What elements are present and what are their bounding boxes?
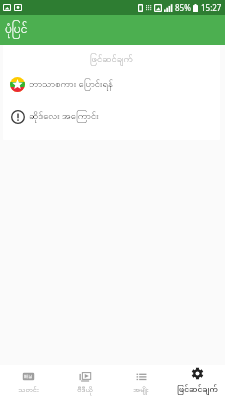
staticText: သတင်း <box>18 385 39 396</box>
staticText: 15:27 <box>201 2 222 13</box>
staticText: ဆိုဒ်လေး အကြောင်း <box>29 109 99 124</box>
button[interactable]: ဗီဒီယို <box>57 365 113 400</box>
staticText: အမျိုး <box>133 385 149 396</box>
button[interactable]: အမျိုး <box>113 365 169 400</box>
button[interactable]: သတင်း <box>0 365 57 400</box>
staticText: ဗီဒီယို <box>77 385 93 396</box>
button[interactable]: ဘာသာစကား ပြောင်းရန် <box>3 68 220 100</box>
staticText: ဖြင်ဆင်ချက် <box>177 382 218 398</box>
staticText: 85% <box>175 2 191 13</box>
button[interactable]: ဆိုဒ်လေး အကြောင်း <box>3 100 220 132</box>
staticText: ဘာသာစကား ပြောင်းရန် <box>29 77 113 92</box>
staticText: ဖြင်ဆင်ချက် <box>90 53 133 67</box>
button[interactable]: ဖြင်ဆင်ချက် <box>169 365 225 400</box>
staticText: ပုံပြင် <box>5 21 28 39</box>
